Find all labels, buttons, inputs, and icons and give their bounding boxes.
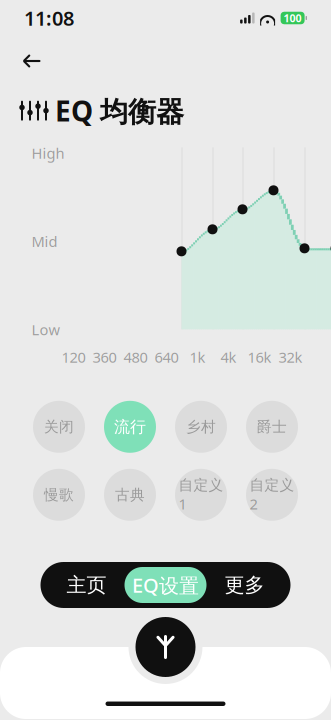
staticText: 关闭 xyxy=(44,418,74,436)
staticText: Mid xyxy=(31,232,57,251)
staticText: Low xyxy=(31,320,60,339)
staticText: 32k xyxy=(278,347,302,367)
staticText: 自定义1 xyxy=(178,476,223,514)
button[interactable]: Expand xyxy=(135,617,195,677)
button[interactable]: 慢歌 xyxy=(33,469,85,521)
button[interactable]: 关闭 xyxy=(33,401,85,453)
staticText: 640 xyxy=(154,347,178,367)
button[interactable]: 乡村 xyxy=(175,401,227,453)
staticText: 古典 xyxy=(115,486,145,504)
staticText: 流行 xyxy=(114,417,146,437)
staticText: EQ 均衡器 xyxy=(55,92,184,129)
staticText: 360 xyxy=(92,347,116,367)
staticText: 乡村 xyxy=(186,418,216,436)
button[interactable]: 自定义1 xyxy=(175,469,227,521)
button[interactable]: 主页 xyxy=(48,562,124,608)
staticText: 100 xyxy=(284,11,302,25)
staticText: 自定义2 xyxy=(249,476,294,514)
staticText: 480 xyxy=(123,347,147,367)
staticText: 爵士 xyxy=(257,418,287,436)
button[interactable]: EQ设置 xyxy=(124,567,206,603)
button[interactable]: 流行 xyxy=(104,401,156,453)
button[interactable]: 爵士 xyxy=(246,401,298,453)
staticText: 4k xyxy=(220,347,236,367)
staticText: 120 xyxy=(61,347,85,367)
staticText: 1k xyxy=(189,347,205,367)
staticText: 慢歌 xyxy=(44,486,74,504)
button[interactable]: Back xyxy=(12,44,52,78)
staticText: High xyxy=(31,143,64,163)
button[interactable]: 更多 xyxy=(206,562,282,608)
staticText: 主页 xyxy=(66,573,106,597)
button[interactable]: 古典 xyxy=(104,469,156,521)
staticText: 11:08 xyxy=(24,5,74,31)
staticText: 16k xyxy=(247,347,271,367)
button[interactable]: 自定义2 xyxy=(246,469,298,521)
staticText: 更多 xyxy=(224,573,264,597)
staticText: EQ设置 xyxy=(132,572,199,598)
